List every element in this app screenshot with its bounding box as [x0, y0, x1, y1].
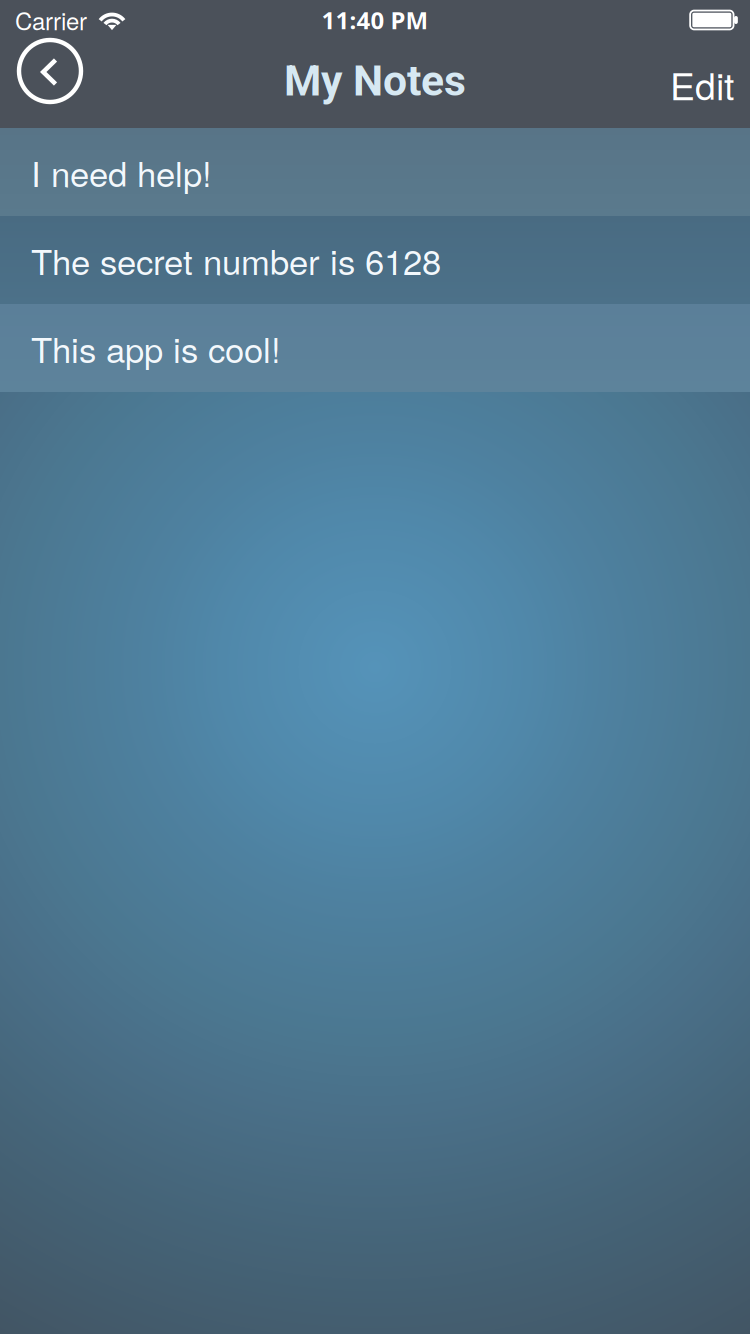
- staticText: My Notes: [284, 56, 466, 106]
- staticText: Edit: [670, 57, 734, 111]
- button[interactable]: I need help!: [0, 128, 750, 216]
- button[interactable]: This app is cool!: [0, 304, 750, 392]
- staticText: This app is cool!: [31, 323, 281, 373]
- button[interactable]: Back: [4, 27, 96, 115]
- staticText: The secret number is 6128: [31, 235, 441, 285]
- button[interactable]: The secret number is 6128: [0, 216, 750, 304]
- staticText: Carrier: [15, 3, 87, 37]
- staticText: 11:40 PM: [321, 4, 428, 36]
- button[interactable]: Edit: [634, 40, 734, 128]
- staticText: I need help!: [31, 147, 212, 197]
